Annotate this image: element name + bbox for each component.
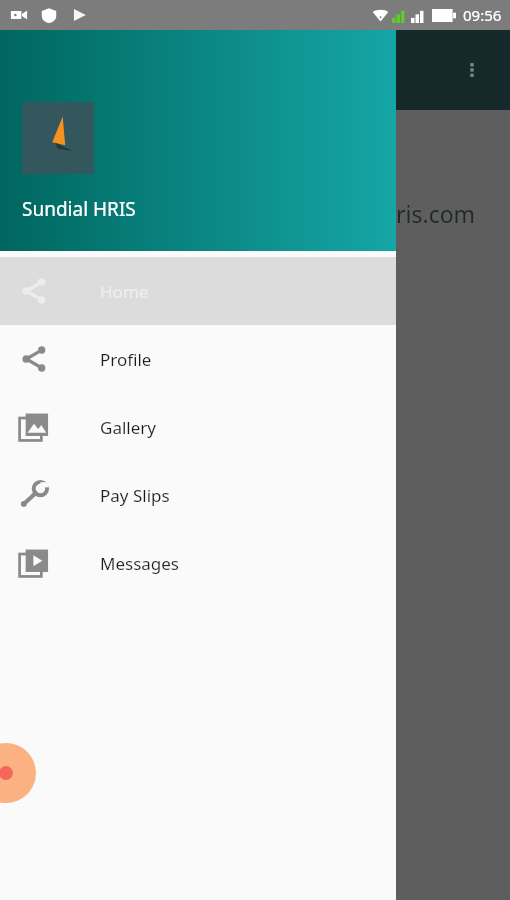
staticText: Home [100, 280, 149, 303]
staticText: Profile [100, 348, 152, 371]
button[interactable]: Messages [0, 529, 396, 597]
button[interactable]: Profile [0, 325, 396, 393]
staticText: Gallery [100, 416, 156, 439]
button[interactable]: More options [452, 50, 492, 90]
staticText: Messages [100, 552, 180, 575]
button[interactable]: Gallery [0, 393, 396, 461]
staticText: Sundial HRIS [22, 196, 136, 222]
staticText: Pay Slips [100, 484, 170, 507]
button[interactable]: Sundial HRIS [0, 30, 396, 251]
staticText: Welcome to sundialhris.com [170, 198, 476, 229]
button[interactable]: Pay Slips [0, 461, 396, 529]
staticText: 09:56 [463, 5, 502, 25]
